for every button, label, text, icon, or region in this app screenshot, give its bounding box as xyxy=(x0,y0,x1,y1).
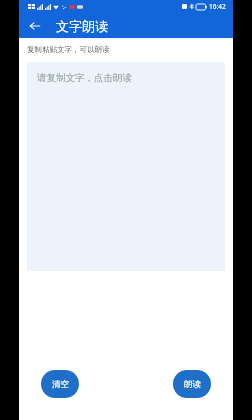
button[interactable]: 请复制文字，点击朗读 xyxy=(27,62,225,271)
staticText: 请复制文字，点击朗读 xyxy=(37,72,132,84)
staticText: 16:42 xyxy=(209,2,226,11)
staticText: 复制粘贴文字，可以朗读 xyxy=(27,45,110,54)
staticText: 清空 xyxy=(52,379,69,390)
button[interactable]: 朗读 xyxy=(173,370,211,398)
staticText: 文字朗读 xyxy=(56,18,108,34)
button[interactable]: Back xyxy=(24,15,46,37)
staticText: 朗读 xyxy=(184,379,201,390)
button[interactable]: 清空 xyxy=(41,370,79,398)
